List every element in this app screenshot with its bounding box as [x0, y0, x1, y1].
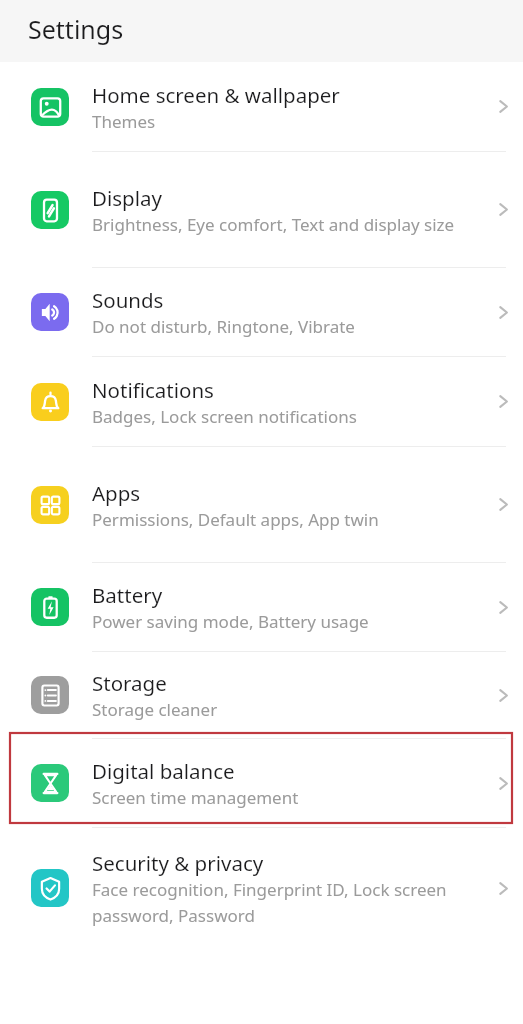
staticText: Home screen & wallpaper	[92, 81, 340, 109]
staticText: Themes	[92, 110, 156, 133]
button[interactable]: Open Sounds	[483, 268, 523, 356]
staticText: Display	[92, 184, 162, 212]
button[interactable]: Open Storage	[483, 652, 523, 738]
staticText: Do not disturb, Ringtone, Vibrate	[92, 315, 355, 338]
staticText: Settings	[28, 12, 124, 46]
staticText: Face recognition, Fingerprint ID, Lock s…	[92, 878, 479, 927]
staticText: Battery	[92, 581, 163, 609]
button[interactable]: Battery	[0, 563, 523, 651]
button[interactable]: Open Security & privacy	[483, 828, 523, 948]
button[interactable]: Open Home screen & wallpaper	[483, 62, 523, 151]
staticText: Storage cleaner	[92, 698, 218, 721]
button[interactable]: Notifications	[0, 357, 523, 446]
staticText: Notifications	[92, 376, 214, 404]
staticText: Permissions, Default apps, App twin	[92, 508, 379, 531]
button[interactable]: Open Apps	[483, 447, 523, 562]
staticText: Digital balance	[92, 757, 235, 785]
staticText: Sounds	[92, 286, 164, 314]
button[interactable]: Security & privacy	[0, 828, 523, 948]
button[interactable]: Open Notifications	[483, 357, 523, 446]
button[interactable]: Storage	[0, 652, 523, 738]
staticText: Brightness, Eye comfort, Text and displa…	[92, 213, 455, 236]
button[interactable]: Open Display	[483, 152, 523, 267]
staticText: Security & privacy	[92, 849, 264, 877]
button[interactable]: Open Battery	[483, 563, 523, 651]
staticText: Power saving mode, Battery usage	[92, 610, 369, 633]
button[interactable]: Apps	[0, 447, 523, 562]
staticText: Storage	[92, 669, 167, 697]
button[interactable]: Sounds	[0, 268, 523, 356]
staticText: Badges, Lock screen notifications	[92, 405, 357, 428]
staticText: Screen time management	[92, 786, 299, 809]
button[interactable]: Display	[0, 152, 523, 267]
button[interactable]: Home screen & wallpaper	[0, 62, 523, 151]
button[interactable]: Open Digital balance	[483, 739, 523, 827]
staticText: Apps	[92, 479, 141, 507]
button[interactable]: Digital balance	[0, 739, 523, 827]
